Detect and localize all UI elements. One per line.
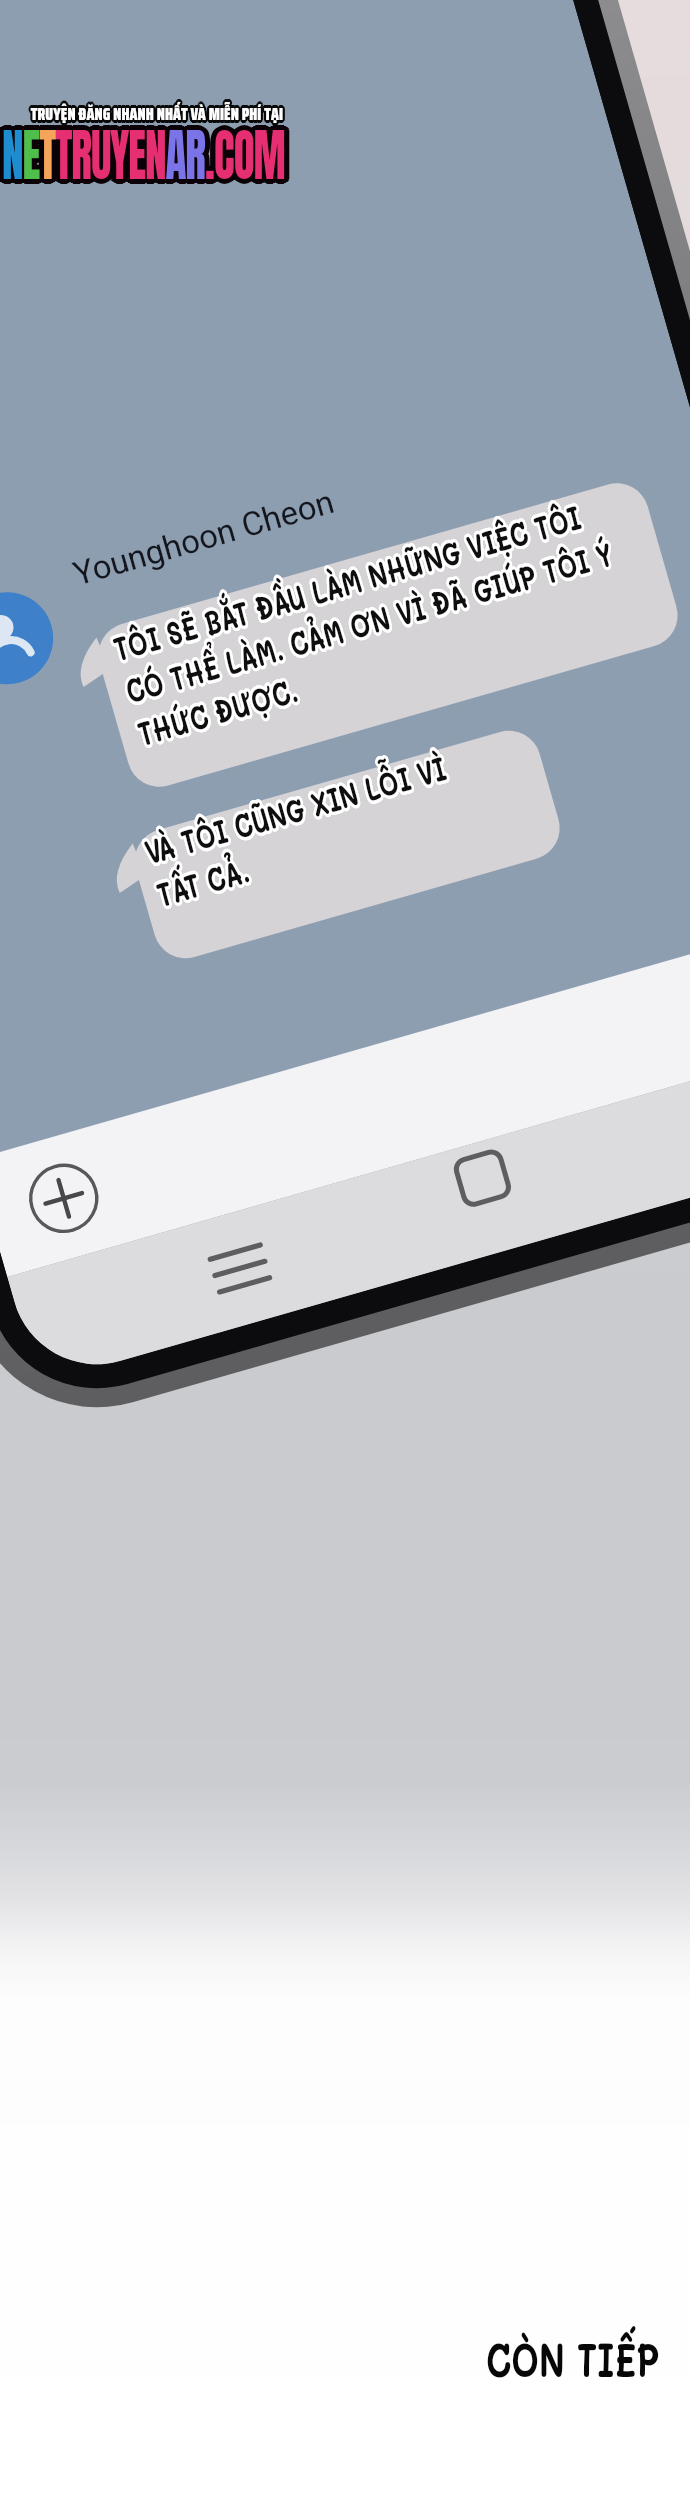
button[interactable] (0, 0, 690, 2500)
